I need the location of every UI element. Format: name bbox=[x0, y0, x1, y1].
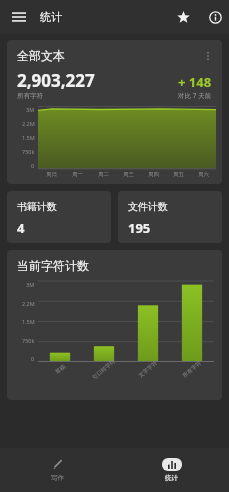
staticText: 750k bbox=[22, 337, 35, 344]
button[interactable]: 写作 bbox=[0, 448, 114, 492]
staticText: 1.5M bbox=[22, 134, 35, 141]
button[interactable]: 文件计数 bbox=[118, 191, 222, 243]
staticText: 草稿 bbox=[54, 363, 67, 376]
staticText: 2.2M bbox=[22, 300, 35, 307]
staticText: 0 bbox=[31, 355, 35, 362]
staticText: 1.5M bbox=[22, 318, 35, 325]
staticText: 书籍计数 bbox=[17, 200, 57, 213]
button[interactable]: 书籍计数 bbox=[7, 191, 111, 243]
staticText: 0 bbox=[31, 162, 35, 169]
button[interactable]: Menu bbox=[8, 6, 30, 28]
button[interactable]: 当前字符计数 bbox=[7, 250, 222, 400]
staticText: 3M bbox=[26, 281, 35, 288]
button[interactable]: Favorite bbox=[171, 5, 195, 29]
button[interactable]: Info bbox=[203, 5, 227, 29]
staticText: 所有字符 bbox=[17, 92, 43, 100]
staticText: 统计 bbox=[165, 474, 178, 482]
staticText: 周六 bbox=[198, 171, 209, 178]
staticText: 所有字符 bbox=[181, 360, 203, 379]
staticText: 对比 7 天前 bbox=[178, 91, 212, 100]
staticText: 统计 bbox=[40, 10, 62, 24]
staticText: 周一 bbox=[72, 171, 83, 178]
staticText: 周日 bbox=[46, 171, 57, 178]
staticText: 195 bbox=[128, 219, 151, 237]
staticText: 文字字符 bbox=[137, 360, 159, 379]
button[interactable]: More options bbox=[200, 48, 216, 64]
staticText: 写作 bbox=[51, 474, 64, 482]
staticText: 周二 bbox=[98, 171, 109, 178]
staticText: 当前字符计数 bbox=[17, 258, 89, 273]
staticText: + 148 bbox=[178, 73, 212, 91]
button[interactable]: 全部文本 bbox=[7, 40, 222, 184]
staticText: 全部文本 bbox=[17, 48, 65, 63]
staticText: 周四 bbox=[148, 171, 159, 178]
staticText: 引口转字符 bbox=[91, 358, 117, 381]
staticText: 文件计数 bbox=[128, 200, 168, 213]
staticText: 周三 bbox=[123, 171, 134, 178]
button[interactable]: 统计 bbox=[114, 448, 229, 492]
staticText: 3M bbox=[26, 106, 35, 113]
staticText: 750k bbox=[22, 148, 35, 155]
staticText: 2.2M bbox=[22, 120, 35, 127]
staticText: 周五 bbox=[173, 171, 184, 178]
staticText: 2,903,227 bbox=[17, 69, 95, 92]
staticText: 4 bbox=[17, 219, 25, 237]
